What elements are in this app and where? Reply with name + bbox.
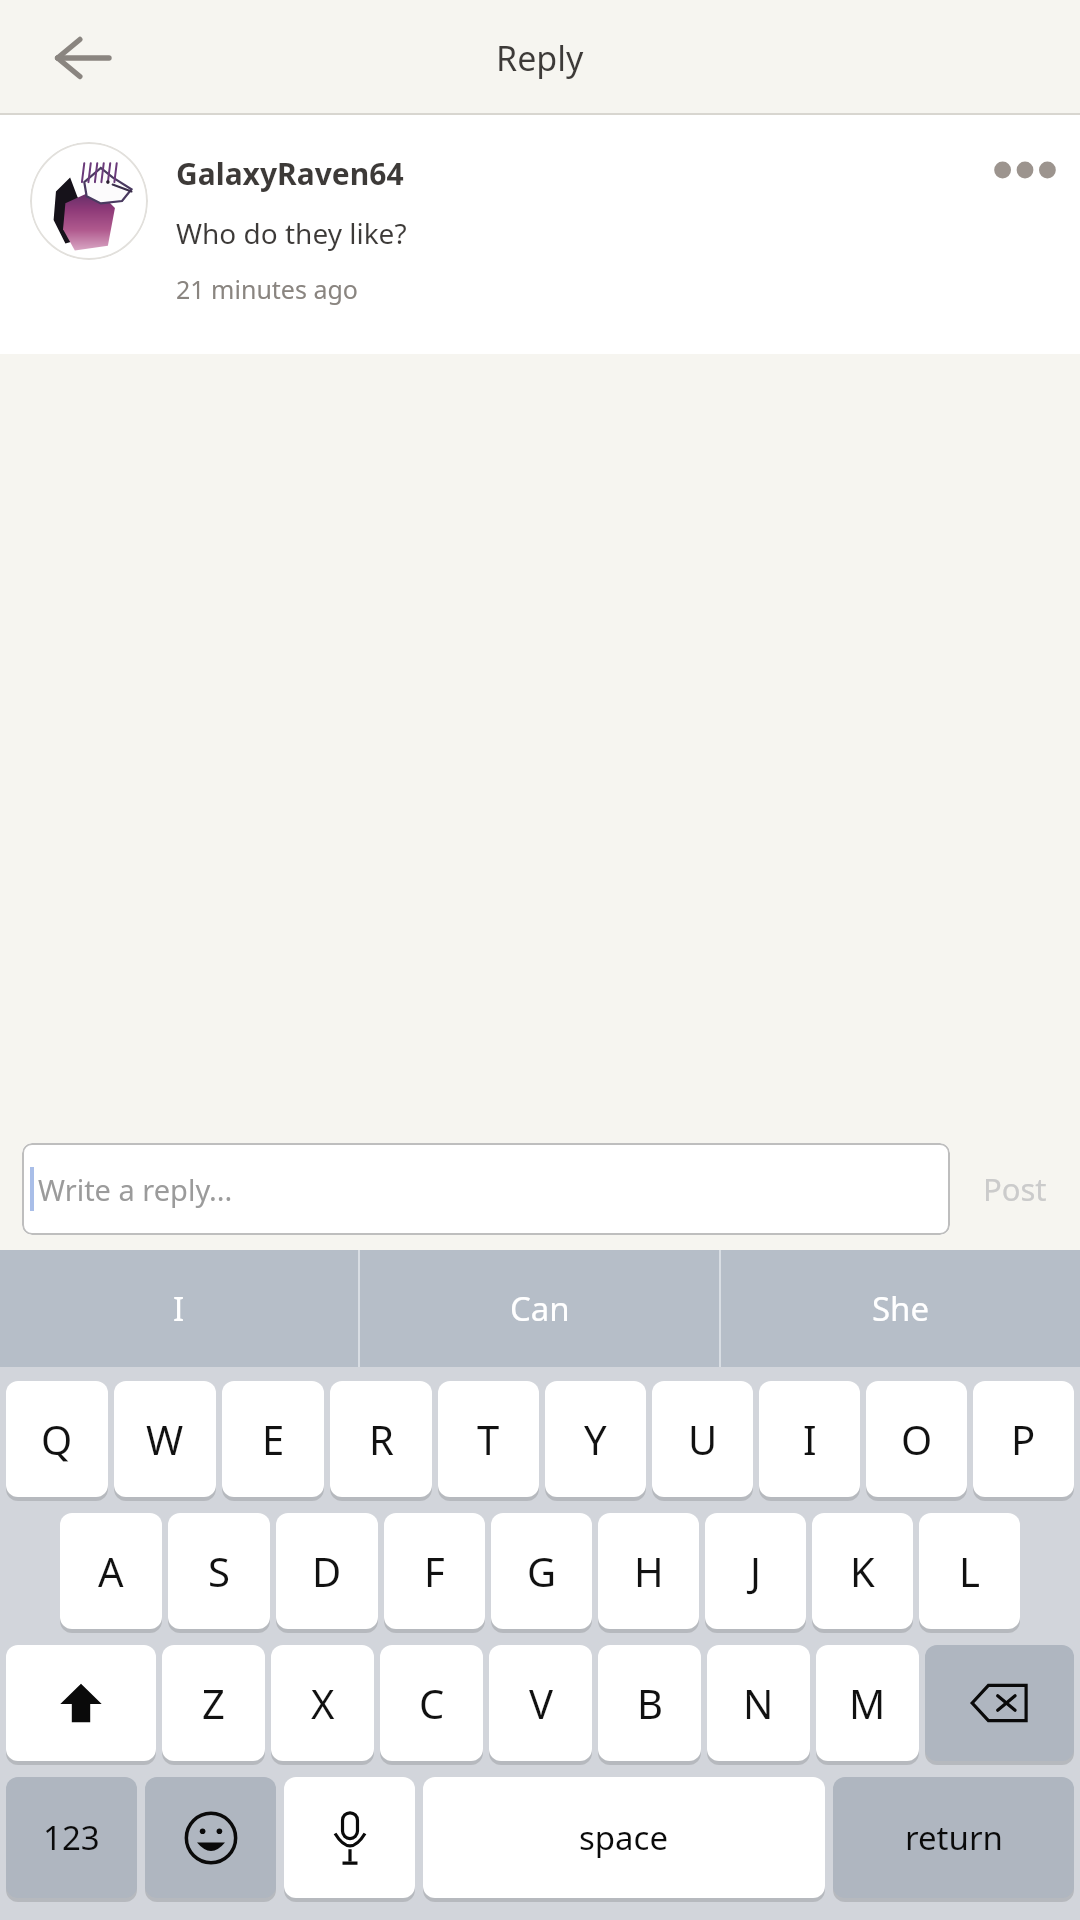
button[interactable]: R <box>330 1381 432 1497</box>
staticText: space <box>579 1815 669 1860</box>
button[interactable]: Emoji <box>145 1777 276 1898</box>
button[interactable]: I <box>759 1381 860 1497</box>
staticText: Can <box>510 1286 570 1331</box>
button[interactable]: Y <box>545 1381 646 1497</box>
button[interactable]: G <box>491 1513 592 1629</box>
staticText: B <box>637 1676 663 1730</box>
button[interactable]: B <box>598 1645 701 1761</box>
button[interactable]: Post <box>950 1127 1080 1250</box>
staticText: A <box>98 1544 124 1598</box>
button[interactable]: Backspace <box>925 1645 1074 1761</box>
staticText: Q <box>41 1412 73 1466</box>
staticText: Reply <box>496 35 584 81</box>
staticText: T <box>477 1412 500 1466</box>
staticText: C <box>419 1676 445 1730</box>
staticText: M <box>849 1676 886 1730</box>
button[interactable]: L <box>919 1513 1020 1629</box>
button[interactable]: J <box>705 1513 806 1629</box>
staticText: K <box>850 1544 875 1598</box>
button[interactable]: X <box>271 1645 374 1761</box>
button[interactable]: Z <box>162 1645 265 1761</box>
button[interactable]: GalaxyRaven64 avatar <box>0 115 1080 354</box>
staticText: I <box>803 1412 817 1466</box>
button[interactable]: A <box>60 1513 162 1629</box>
button[interactable]: Write a reply... <box>22 1143 950 1235</box>
staticText: G <box>527 1544 557 1598</box>
button[interactable]: I <box>0 1250 358 1367</box>
button[interactable]: More options <box>970 115 1080 225</box>
staticText: Y <box>584 1412 607 1466</box>
button[interactable]: W <box>114 1381 216 1497</box>
staticText: I <box>173 1286 185 1331</box>
staticText: J <box>750 1544 761 1598</box>
button[interactable]: return <box>833 1777 1074 1898</box>
staticText: GalaxyRaven64 <box>176 153 404 194</box>
button[interactable]: Shift <box>6 1645 156 1761</box>
staticText: 123 <box>43 1815 100 1860</box>
button[interactable]: O <box>866 1381 967 1497</box>
staticText: O <box>901 1412 933 1466</box>
button[interactable]: Can <box>360 1250 719 1367</box>
staticText: Z <box>202 1676 225 1730</box>
staticText: L <box>959 1544 980 1598</box>
button[interactable]: U <box>652 1381 753 1497</box>
staticText: R <box>369 1412 394 1466</box>
button[interactable]: Back <box>28 8 138 108</box>
staticText: E <box>262 1412 285 1466</box>
button[interactable]: N <box>707 1645 810 1761</box>
staticText: H <box>634 1544 664 1598</box>
staticText: Post <box>983 1168 1047 1210</box>
button[interactable]: D <box>276 1513 378 1629</box>
button[interactable]: GalaxyRaven64 avatar <box>30 142 148 260</box>
button[interactable]: E <box>222 1381 324 1497</box>
button[interactable]: F <box>384 1513 485 1629</box>
button[interactable]: She <box>721 1250 1080 1367</box>
button[interactable]: V <box>489 1645 592 1761</box>
staticText: W <box>146 1412 184 1466</box>
staticText: Who do they like? <box>176 214 407 252</box>
staticText: P <box>1011 1412 1036 1466</box>
button[interactable]: 123 <box>6 1777 137 1898</box>
button[interactable]: H <box>598 1513 699 1629</box>
button[interactable]: S <box>168 1513 270 1629</box>
staticText: X <box>311 1676 335 1730</box>
staticText: D <box>312 1544 342 1598</box>
button[interactable]: Voice input <box>284 1777 415 1898</box>
button[interactable]: space <box>423 1777 825 1898</box>
button[interactable]: T <box>438 1381 539 1497</box>
staticText: V <box>529 1676 553 1730</box>
button[interactable]: Q <box>6 1381 108 1497</box>
staticText: She <box>872 1286 930 1331</box>
button[interactable]: C <box>380 1645 483 1761</box>
button[interactable]: K <box>812 1513 913 1629</box>
staticText: U <box>688 1412 718 1466</box>
staticText: Write a reply... <box>38 1170 233 1209</box>
staticText: F <box>424 1544 445 1598</box>
staticText: N <box>743 1676 774 1730</box>
staticText: 21 minutes ago <box>176 272 358 306</box>
staticText: return <box>905 1815 1003 1860</box>
button[interactable]: P <box>973 1381 1074 1497</box>
button[interactable]: M <box>816 1645 919 1761</box>
staticText: S <box>208 1544 230 1598</box>
